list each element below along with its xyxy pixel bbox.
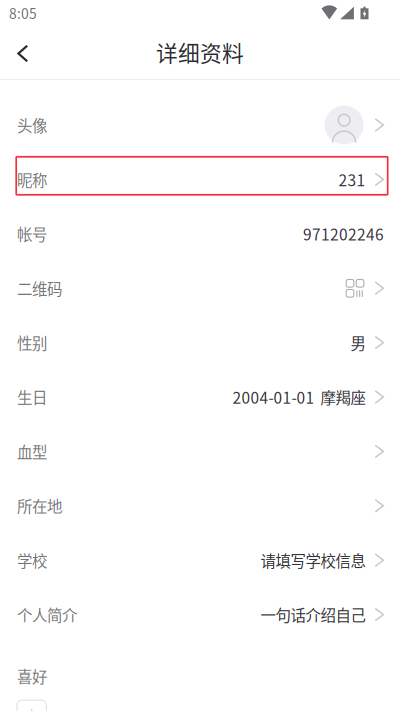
button[interactable]: 生日 (0, 370, 400, 424)
staticText: 头像 (17, 114, 47, 136)
button[interactable]: 添加喜好 (17, 700, 46, 711)
staticText: 2004-01-01 摩羯座 (233, 386, 366, 408)
staticText: 231 (339, 168, 366, 191)
staticText: 生日 (17, 386, 47, 408)
staticText: 请填写学校信息 (261, 549, 366, 571)
staticText: 一句话介绍自己 (261, 603, 366, 626)
staticText: 血型 (17, 440, 47, 463)
button[interactable]: 返回 (0, 30, 48, 76)
staticText: 所在地 (17, 495, 62, 517)
button[interactable]: 学校 (0, 533, 400, 587)
button[interactable]: 帐号 (0, 207, 400, 261)
staticText: 性别 (17, 331, 47, 354)
button[interactable]: 头像 (0, 98, 400, 152)
staticText: 8:05 (9, 3, 37, 23)
button[interactable]: 血型 (0, 424, 400, 479)
staticText: 个人简介 (17, 603, 77, 626)
staticText: 喜好 (17, 665, 47, 687)
staticText: + (28, 704, 36, 711)
staticText: 帐号 (17, 223, 47, 245)
staticText: 二维码 (17, 277, 62, 299)
button[interactable]: 个人简介 (0, 587, 400, 642)
button[interactable]: 二维码 (0, 261, 400, 315)
staticText: 男 (351, 331, 366, 354)
staticText: 学校 (17, 549, 47, 571)
staticText: 昵称 (17, 168, 47, 191)
button[interactable]: 性别 (0, 315, 400, 370)
staticText: 971202246 (303, 223, 384, 245)
button[interactable]: 所在地 (0, 479, 400, 533)
staticText: 详细资料 (156, 36, 244, 68)
button[interactable]: 昵称 (0, 152, 400, 207)
